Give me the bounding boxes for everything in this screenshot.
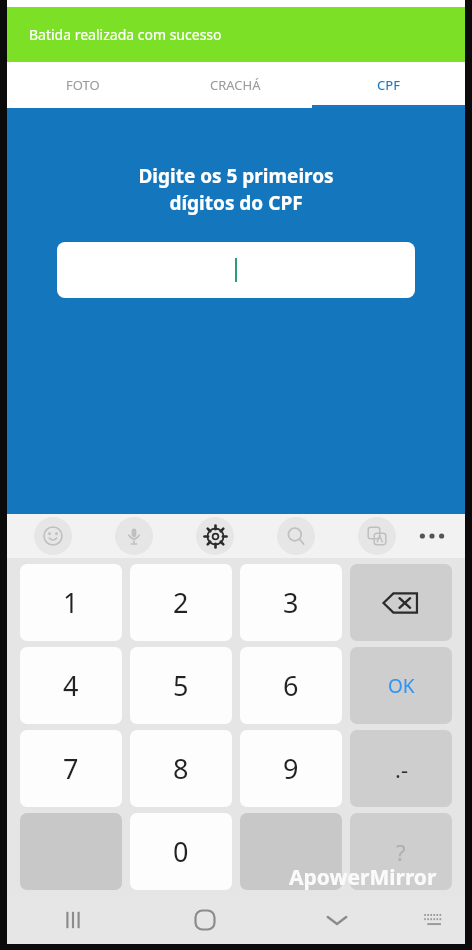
staticText: 9 <box>283 750 299 787</box>
button[interactable]: 3 <box>240 564 342 641</box>
button[interactable]: 5 <box>130 647 232 724</box>
button[interactable]: Voice input <box>115 517 153 555</box>
button[interactable]: CRACHÁ <box>159 62 312 108</box>
staticText: .- <box>395 754 408 784</box>
staticText: 7 <box>63 750 79 787</box>
staticText: 8 <box>173 750 189 787</box>
staticText: 5 <box>173 667 189 704</box>
staticText: CPF <box>377 76 401 94</box>
staticText: OK <box>388 673 415 699</box>
button[interactable]: Switch keyboard <box>403 896 465 944</box>
button[interactable]: .- <box>350 730 452 807</box>
button[interactable]: 8 <box>130 730 232 807</box>
staticText: 2 <box>173 584 189 621</box>
button[interactable]: More options <box>415 519 449 553</box>
staticText: 6 <box>283 667 299 704</box>
staticText: Batida realizada com sucesso <box>29 25 222 44</box>
button[interactable]: Home <box>139 896 271 944</box>
staticText: CRACHÁ <box>210 76 261 94</box>
button[interactable]: 7 <box>20 730 122 807</box>
button[interactable]: Key <box>240 813 342 890</box>
button[interactable]: ? <box>350 813 452 890</box>
button[interactable]: 2 <box>130 564 232 641</box>
staticText: 4 <box>63 667 79 704</box>
button[interactable]: CPF <box>312 62 465 108</box>
button[interactable]: Recent apps <box>7 896 139 944</box>
button[interactable]: 0 <box>130 813 232 890</box>
staticText: Digite os 5 primeiros dígitos do CPF <box>138 163 334 216</box>
staticText: 0 <box>173 833 189 870</box>
button[interactable]: Keyboard settings <box>196 517 234 555</box>
button[interactable]: Translate <box>358 517 396 555</box>
button[interactable]: 9 <box>240 730 342 807</box>
button[interactable]: 1 <box>20 564 122 641</box>
button[interactable]: OK <box>350 647 452 724</box>
staticText: 1 <box>63 584 79 621</box>
staticText: ? <box>396 837 406 867</box>
staticText: 3 <box>283 584 299 621</box>
button[interactable]: Hide keyboard <box>271 896 403 944</box>
staticText: FOTO <box>66 76 100 94</box>
button[interactable] <box>57 242 415 298</box>
button[interactable]: 6 <box>240 647 342 724</box>
button[interactable]: Search <box>277 517 315 555</box>
button[interactable]: Emoji <box>34 517 72 555</box>
staticText: ApowerMirror <box>289 863 437 892</box>
button[interactable]: FOTO <box>7 62 159 108</box>
button[interactable]: 4 <box>20 647 122 724</box>
button[interactable]: Backspace <box>350 564 452 641</box>
